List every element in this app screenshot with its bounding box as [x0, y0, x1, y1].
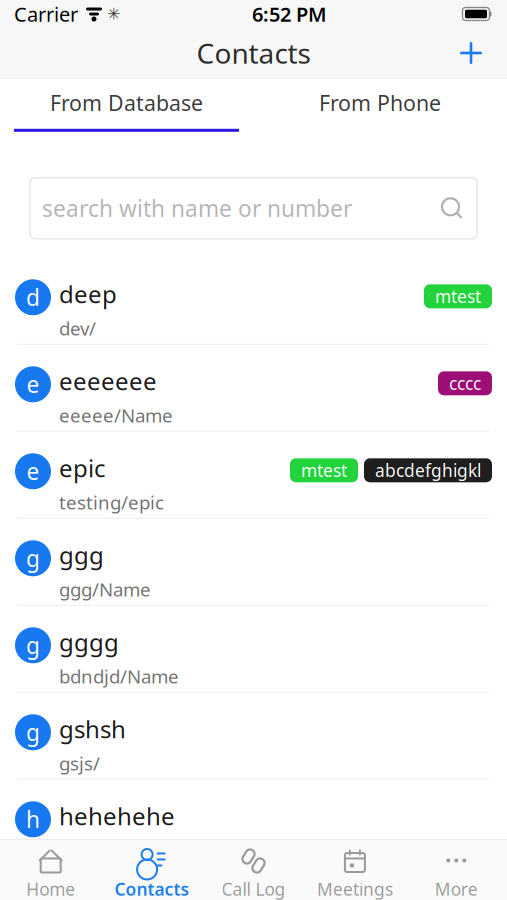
staticText: eeeeeee: [59, 365, 157, 397]
staticText: dev/: [59, 316, 96, 341]
button[interactable]: d: [0, 258, 507, 345]
button[interactable]: From Phone: [253, 79, 507, 132]
staticText: hehehehe: [59, 800, 175, 832]
staticText: Call Log: [221, 877, 285, 900]
staticText: search with name or number: [42, 193, 352, 223]
staticText: abcdefghigkl: [375, 459, 481, 482]
button[interactable]: g: [0, 693, 507, 780]
staticText: bdndjd/Name: [59, 664, 179, 689]
staticText: From Database: [50, 88, 203, 117]
staticText: ✳: [107, 5, 120, 23]
staticText: From Phone: [319, 88, 441, 117]
button[interactable]: From Database: [0, 79, 253, 132]
staticText: Carrier: [14, 1, 78, 27]
staticText: Home: [26, 877, 75, 900]
staticText: e: [26, 369, 39, 399]
staticText: g: [26, 543, 40, 573]
staticText: More: [435, 877, 478, 900]
staticText: d: [26, 282, 40, 312]
staticText: eeeee/Name: [59, 403, 173, 428]
staticText: ggg: [59, 539, 104, 571]
staticText: gshsh: [59, 713, 126, 745]
staticText: g: [26, 717, 40, 747]
staticText: deep: [59, 278, 117, 310]
staticText: ggg/Name: [59, 577, 151, 602]
staticText: 6:52 PM: [252, 1, 327, 27]
button[interactable]: Call Log: [203, 840, 304, 900]
button[interactable]: g: [0, 519, 507, 606]
staticText: mtest: [301, 459, 347, 482]
button[interactable]: g: [0, 606, 507, 693]
staticText: Contacts: [115, 877, 190, 900]
staticText: Meetings: [317, 877, 393, 900]
staticText: mtest: [435, 285, 481, 308]
button[interactable]: Add Contact: [449, 31, 493, 75]
button[interactable]: e: [0, 432, 507, 519]
button[interactable]: More: [406, 840, 507, 900]
staticText: cccc: [449, 372, 481, 395]
button[interactable]: Search with name or number: [30, 178, 477, 239]
button[interactable]: Contacts: [101, 840, 203, 900]
button[interactable]: e: [0, 345, 507, 432]
staticText: h: [26, 804, 40, 834]
staticText: g: [26, 630, 40, 660]
staticText: gsjs/: [59, 751, 100, 776]
staticText: e: [26, 456, 39, 486]
button[interactable]: Meetings: [304, 840, 406, 900]
staticText: epic: [59, 452, 106, 484]
staticText: Contacts: [196, 34, 310, 72]
button[interactable]: h: [0, 780, 507, 867]
staticText: gggg: [59, 626, 119, 658]
button[interactable]: Home: [0, 840, 101, 900]
staticText: testing/epic: [59, 490, 164, 515]
staticText: hshs/Name: [59, 838, 160, 863]
